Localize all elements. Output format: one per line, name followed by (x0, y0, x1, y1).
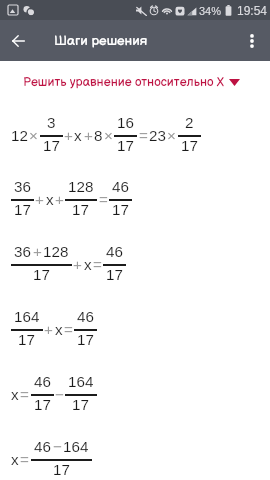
staticText: x (11, 451, 19, 468)
staticText: × (29, 127, 38, 144)
staticText: 23 (149, 127, 166, 144)
button[interactable]: More options (236, 25, 268, 57)
staticText: 2 (185, 114, 194, 131)
staticText: 36 (14, 178, 31, 195)
button[interactable]: Решить уравнение относительно X (0, 61, 270, 103)
staticText: = (64, 321, 73, 338)
staticText: + (73, 256, 82, 273)
staticText: 164 (68, 373, 94, 390)
staticText: x (11, 386, 19, 403)
button[interactable]: x (0, 362, 270, 427)
staticText: 128 (68, 178, 94, 195)
staticText: 46 (34, 438, 51, 455)
staticText: 17 (112, 201, 129, 218)
button[interactable]: Navigate up (2, 25, 34, 57)
staticText: + (55, 191, 64, 208)
staticText: + (84, 127, 93, 144)
staticText: 16 (117, 114, 134, 131)
staticText: 17 (117, 137, 134, 154)
staticText: 12 (11, 127, 28, 144)
staticText: 3 (47, 114, 56, 131)
staticText: + (44, 321, 53, 338)
staticText: 128 (43, 243, 69, 260)
staticText: 17 (34, 396, 51, 413)
staticText: x (46, 191, 54, 208)
staticText: 8 (94, 127, 103, 144)
staticText: = (20, 451, 29, 468)
staticText: x (84, 256, 92, 273)
staticText: × (167, 127, 176, 144)
staticText: × (104, 127, 113, 144)
staticText: x (74, 127, 82, 144)
staticText: 17 (43, 137, 60, 154)
button[interactable]: x (0, 427, 270, 480)
staticText: = (93, 256, 102, 273)
staticText: 17 (106, 266, 123, 283)
staticText: 46 (112, 178, 129, 195)
staticText: 46 (77, 308, 94, 325)
staticText: = (20, 386, 29, 403)
staticText: 19:54 (237, 4, 268, 17)
staticText: 164 (63, 438, 89, 455)
staticText: 17 (33, 266, 50, 283)
staticText: 36 (14, 243, 31, 260)
button[interactable]: 36 (0, 232, 270, 297)
staticText: 164 (14, 308, 40, 325)
staticText: x (55, 321, 63, 338)
staticText: = (99, 191, 108, 208)
staticText: + (64, 127, 73, 144)
staticText: 17 (18, 331, 35, 348)
staticText: 46 (106, 243, 123, 260)
staticText: + (33, 243, 42, 260)
button[interactable]: 164 (0, 297, 270, 362)
staticText: − (55, 386, 64, 403)
staticText: 34% (199, 5, 222, 17)
button[interactable]: 36 (0, 167, 270, 232)
button[interactable]: 12 (0, 103, 270, 168)
staticText: + (35, 191, 44, 208)
staticText: 17 (181, 137, 198, 154)
staticText: 17 (53, 461, 70, 478)
staticText: Решить уравнение относительно X (23, 75, 224, 90)
staticText: 17 (14, 201, 31, 218)
staticText: Шаги решения (54, 33, 148, 49)
staticText: 17 (72, 396, 89, 413)
staticText: 17 (77, 331, 94, 348)
staticText: 46 (34, 373, 51, 390)
staticText: 17 (72, 201, 89, 218)
staticText: = (139, 127, 148, 144)
staticText: − (53, 438, 62, 455)
